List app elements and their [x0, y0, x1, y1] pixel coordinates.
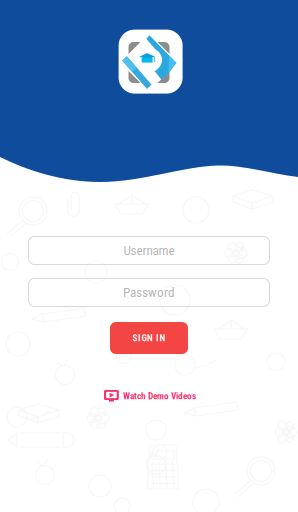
staticText: SIGN IN	[132, 332, 165, 343]
staticText: Username	[123, 243, 174, 258]
staticText: Password	[123, 285, 175, 300]
button[interactable]: Password	[28, 278, 269, 306]
button[interactable]: SIGN IN	[110, 322, 188, 354]
button[interactable]: Username	[28, 236, 269, 264]
staticText: Watch Demo Videos	[123, 390, 196, 401]
button[interactable]: Watch Demo Videos	[104, 390, 196, 402]
